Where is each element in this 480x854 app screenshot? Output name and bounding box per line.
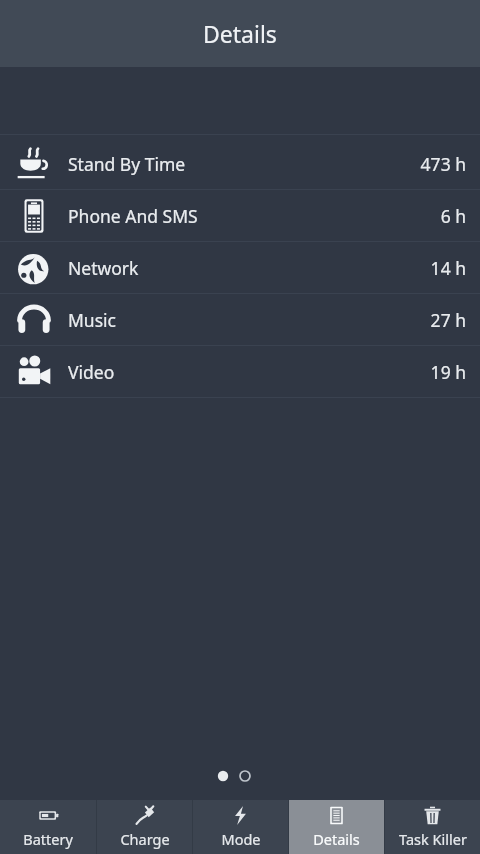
button[interactable]: Task Killer bbox=[385, 800, 480, 854]
staticText: Music bbox=[68, 308, 116, 332]
button[interactable]: Stand By Time bbox=[0, 138, 480, 189]
staticText: 27 h bbox=[430, 308, 466, 332]
button[interactable]: Phone And SMS bbox=[0, 190, 480, 241]
staticText: 14 h bbox=[430, 256, 466, 280]
staticText: Battery bbox=[23, 829, 73, 849]
button[interactable]: Video bbox=[0, 346, 480, 397]
button[interactable]: Charge bbox=[97, 800, 192, 854]
staticText: Stand By Time bbox=[68, 152, 186, 176]
staticText: 6 h bbox=[440, 204, 466, 228]
button[interactable]: Network bbox=[0, 242, 480, 293]
staticText: Details bbox=[203, 18, 277, 49]
staticText: Network bbox=[68, 256, 139, 280]
staticText: Mode bbox=[221, 829, 261, 849]
staticText: Charge bbox=[120, 829, 170, 849]
staticText: 19 h bbox=[430, 360, 466, 384]
button[interactable]: Mode bbox=[193, 800, 288, 854]
button[interactable]: Music bbox=[0, 294, 480, 345]
staticText: Video bbox=[68, 360, 115, 384]
staticText: Details bbox=[313, 829, 360, 849]
button[interactable]: Battery bbox=[0, 800, 96, 854]
button[interactable]: Details bbox=[289, 800, 384, 854]
staticText: 473 h bbox=[420, 152, 466, 176]
staticText: Task Killer bbox=[399, 829, 467, 849]
staticText: Phone And SMS bbox=[68, 204, 198, 228]
